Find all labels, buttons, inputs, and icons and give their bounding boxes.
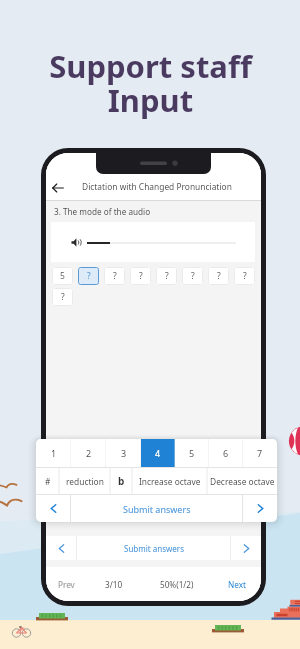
staticText: reduction [66,476,104,487]
button[interactable]: 5 [175,439,209,467]
staticText: ? [61,291,65,303]
button[interactable]: Back [47,177,69,199]
staticText: 7 [257,447,263,459]
button[interactable]: reduction [59,468,110,494]
staticText: Prev [58,579,75,590]
staticText: 3. The mode of the audio [54,206,151,217]
button[interactable]: 7 [243,439,277,467]
button[interactable]: ? [208,267,229,285]
button[interactable]: ? [78,267,99,285]
staticText: 6 [223,447,229,459]
staticText: ? [139,270,143,282]
staticText: ? [113,270,117,282]
button[interactable]: Play audio [71,237,82,248]
staticText: 1 [51,447,57,459]
staticText: ? [243,270,247,282]
staticText: 4 [155,447,161,459]
button[interactable]: 3 [106,439,141,467]
staticText: Decrease octave [210,476,275,487]
staticText: 50%(1/2) [160,579,194,590]
button[interactable]: Prev [46,567,87,601]
button[interactable]: Submit answers [77,536,230,560]
button[interactable]: Previous [46,536,76,560]
staticText: 5 [60,270,65,282]
staticText: ? [165,270,169,282]
staticText: Support staff Input [49,45,252,121]
button[interactable]: Next [213,567,261,601]
button[interactable]: 6 [209,439,243,467]
button[interactable]: ? [234,267,255,285]
staticText: Increase octave [139,476,201,487]
staticText: Next [228,579,246,590]
staticText: Submit answers [123,503,191,515]
staticText: 3 [121,447,127,459]
staticText: Submit answers [124,543,184,554]
button[interactable]: Next [243,495,277,522]
button[interactable]: # [36,468,59,494]
staticText: ? [87,270,91,282]
button[interactable]: 1 [36,439,71,467]
button[interactable]: Submit answers [71,495,242,522]
button[interactable]: 4 [141,439,175,467]
staticText: b [118,474,125,488]
button[interactable]: Next [231,536,261,560]
button[interactable]: ? [104,267,125,285]
staticText: Dictation with Changed Pronunciation [82,181,232,192]
button[interactable]: Increase octave [132,468,207,494]
staticText: 2 [86,447,92,459]
button[interactable]: b [110,468,132,494]
button[interactable]: 5 [52,267,73,285]
staticText: 3/10 [105,579,123,590]
staticText: ? [217,270,221,282]
button[interactable]: Decrease octave [207,468,277,494]
button[interactable]: ? [52,288,73,306]
button[interactable]: Previous [36,495,70,522]
button[interactable]: ? [130,267,151,285]
button[interactable]: ? [156,267,177,285]
staticText: ? [191,270,195,282]
button[interactable]: ? [182,267,203,285]
staticText: # [45,476,51,487]
button[interactable]: 2 [71,439,106,467]
staticText: 5 [189,447,195,459]
